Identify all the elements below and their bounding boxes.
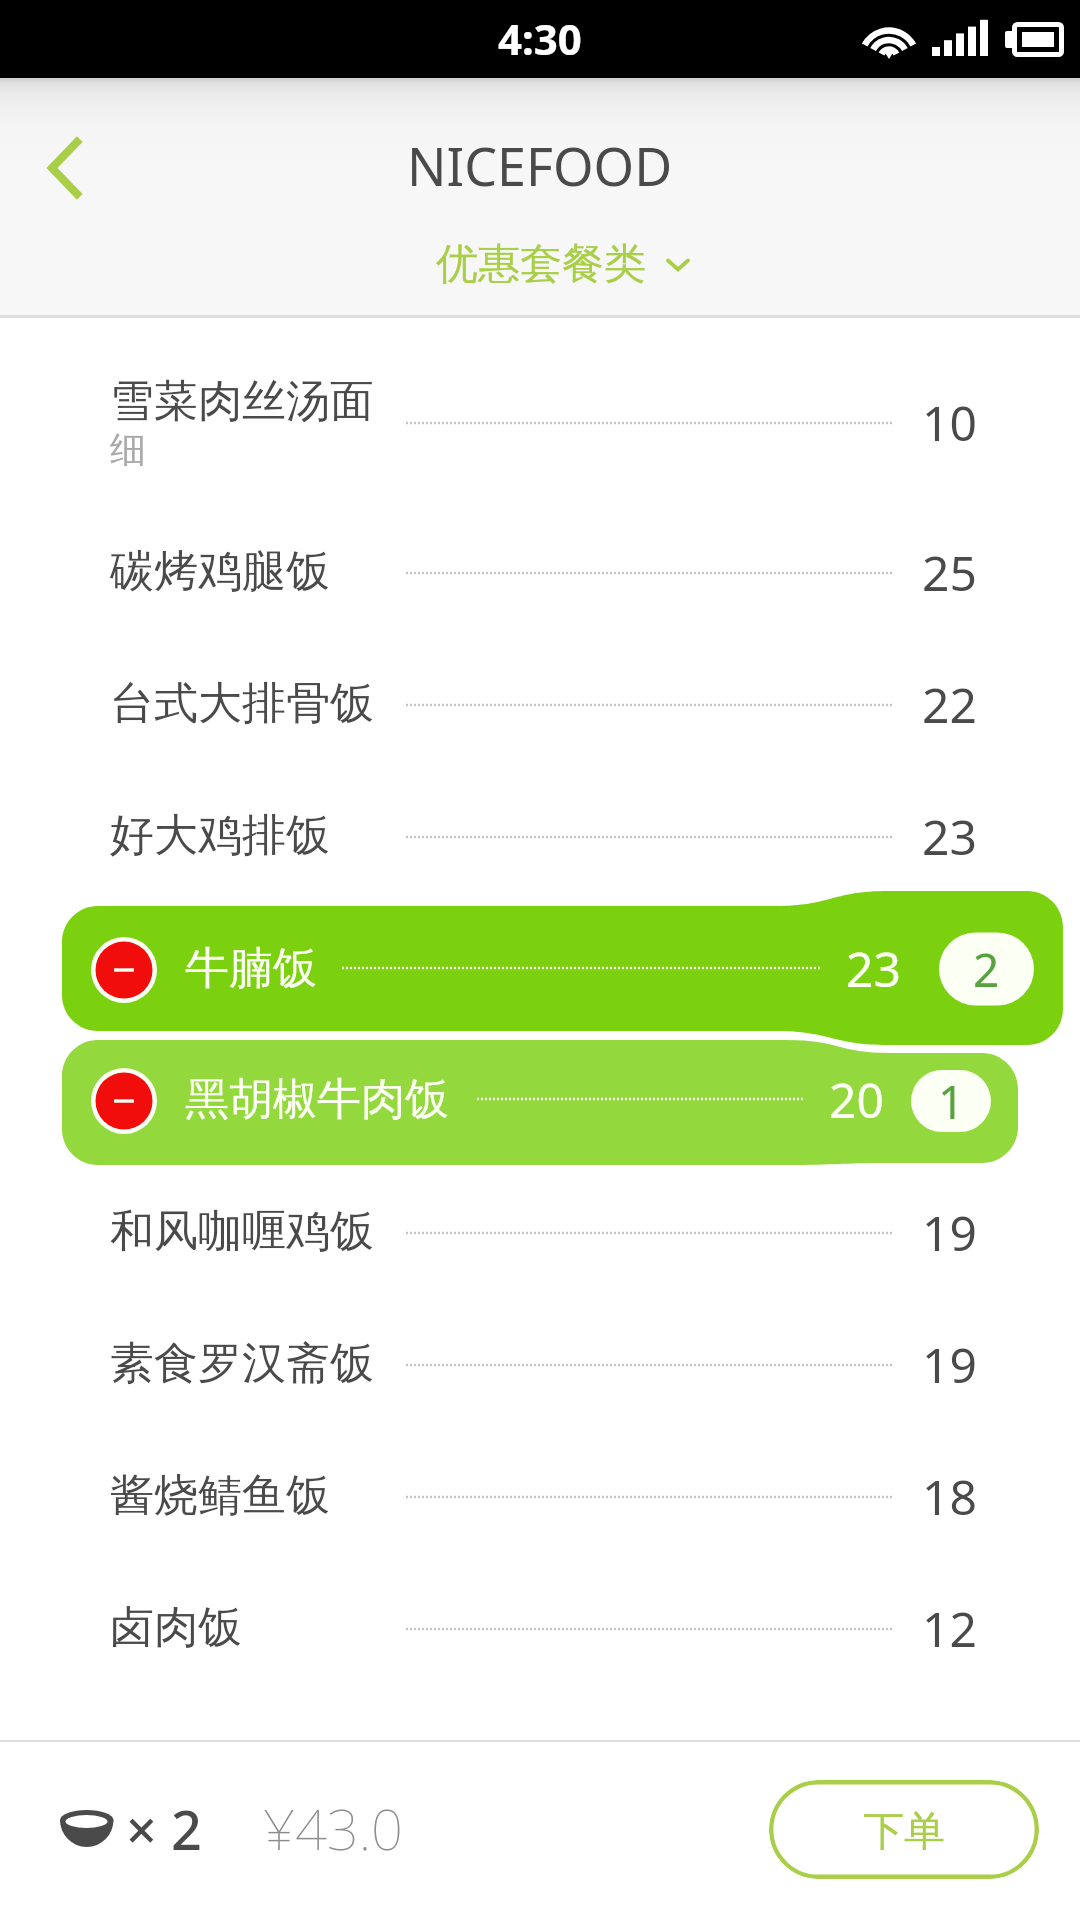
staticText: 和风咖喱鸡饭 xyxy=(110,1204,374,1259)
staticText: NICEFOOD xyxy=(407,130,673,201)
staticText: 2 xyxy=(973,938,1000,1001)
button[interactable]: 优惠套餐类 xyxy=(436,238,690,291)
staticText: × 2 xyxy=(126,1792,202,1866)
button[interactable]: 下单 xyxy=(769,1780,1039,1879)
staticText: 雪菜肉丝汤面 xyxy=(110,374,374,429)
button[interactable]: 和风咖喱鸡饭 xyxy=(0,1170,1080,1296)
staticText: 碳烤鸡腿饭 xyxy=(110,544,330,599)
staticText: 10 xyxy=(922,390,977,455)
staticText: 12 xyxy=(922,1596,977,1661)
staticText: 1 xyxy=(938,1070,965,1132)
staticText: 黑胡椒牛肉饭 xyxy=(185,1072,449,1127)
button[interactable]: 好大鸡排饭 xyxy=(0,774,1080,900)
staticText: 4:30 xyxy=(498,10,582,67)
staticText: 素食罗汉斋饭 xyxy=(110,1336,374,1391)
staticText: 23 xyxy=(922,804,977,869)
staticText: 22 xyxy=(922,672,977,737)
button[interactable]: 台式大排骨饭 xyxy=(0,642,1080,768)
staticText: 20 xyxy=(829,1067,884,1132)
button[interactable]: 卤肉饭 xyxy=(0,1566,1080,1692)
staticText: 优惠套餐类 xyxy=(436,238,646,291)
staticText: 19 xyxy=(922,1200,977,1265)
staticText: 23 xyxy=(846,936,901,1001)
staticText: 下单 xyxy=(863,1806,945,1858)
button[interactable]: 黑胡椒牛肉饭 xyxy=(0,0,1080,1920)
button[interactable]: Back xyxy=(12,104,116,208)
staticText: 25 xyxy=(922,540,977,605)
staticText: 19 xyxy=(922,1332,977,1397)
button[interactable]: 碳烤鸡腿饭 xyxy=(0,510,1080,636)
button[interactable]: 素食罗汉斋饭 xyxy=(0,1302,1080,1428)
staticText: ¥43.0 xyxy=(263,1790,403,1866)
staticText: 牛腩饭 xyxy=(185,941,317,996)
staticText: 酱烧鲭鱼饭 xyxy=(110,1468,330,1523)
staticText: 卤肉饭 xyxy=(110,1600,242,1655)
staticText: 好大鸡排饭 xyxy=(110,808,330,863)
staticText: 细 xyxy=(110,427,146,472)
staticText: 18 xyxy=(922,1464,977,1529)
button[interactable]: 雪菜肉丝汤面 xyxy=(0,360,1080,486)
button[interactable]: 酱烧鲭鱼饭 xyxy=(0,1434,1080,1560)
button[interactable]: 牛腩饭 xyxy=(0,0,1080,1920)
staticText: 台式大排骨饭 xyxy=(110,676,374,731)
